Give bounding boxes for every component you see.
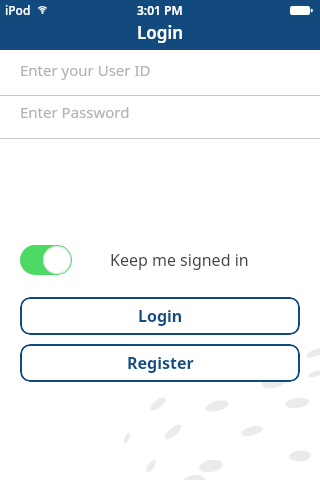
button[interactable] <box>20 245 72 275</box>
button[interactable]: Enter your User ID <box>0 50 320 95</box>
staticText: 3:01 PM <box>137 2 183 18</box>
staticText: Register <box>127 352 194 374</box>
staticText: iPod <box>5 2 31 18</box>
staticText: Login <box>138 305 183 327</box>
button[interactable]: Register <box>20 344 300 382</box>
staticText: Enter your User ID <box>20 60 151 80</box>
staticText: Keep me signed in <box>110 249 249 271</box>
staticText: Login <box>137 21 184 44</box>
button[interactable]: Enter Password <box>0 96 320 138</box>
button[interactable]: Login <box>20 297 300 335</box>
staticText: Enter Password <box>20 102 130 122</box>
